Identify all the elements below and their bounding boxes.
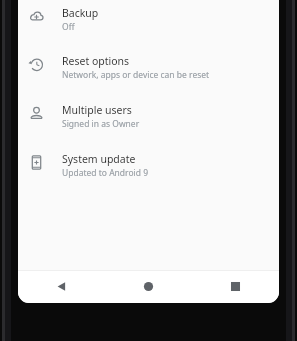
staticText: Backup [62,6,99,20]
button[interactable]: Reset options [18,48,279,97]
staticText: Signed in as Owner [62,118,140,130]
staticText: Reset options [62,54,130,68]
staticText: System update [62,152,136,166]
button[interactable]: Backup [18,0,279,48]
button[interactable]: Multiple users [18,97,279,146]
staticText: Off [62,21,75,33]
button[interactable]: Back [18,270,105,303]
button[interactable]: Recent apps [192,270,279,303]
staticText: Network, apps or device can be reset [62,69,210,81]
button[interactable]: System update [18,146,279,195]
staticText: Updated to Android 9 [62,167,149,179]
button[interactable]: Home [105,270,192,303]
staticText: Multiple users [62,103,132,117]
